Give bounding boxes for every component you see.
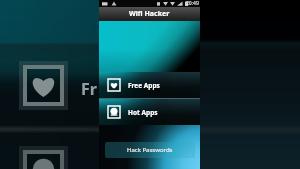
staticText: Free Apps bbox=[128, 81, 160, 90]
staticText: 20:49 bbox=[186, 0, 199, 7]
button[interactable]: Hot Apps bbox=[99, 99, 200, 125]
button[interactable]: Hack Passwords bbox=[105, 142, 195, 158]
button[interactable]: Free Apps bbox=[99, 72, 200, 98]
staticText: Fr bbox=[81, 78, 97, 100]
other: Free Apps bbox=[108, 79, 120, 91]
staticText: Hack Passwords bbox=[127, 146, 173, 154]
staticText: Hot Apps bbox=[128, 108, 158, 117]
other: Hot Apps bbox=[108, 106, 120, 118]
staticText: Wifi Hacker bbox=[129, 9, 170, 19]
button[interactable]: Wifi Hacker bbox=[99, 7, 200, 21]
